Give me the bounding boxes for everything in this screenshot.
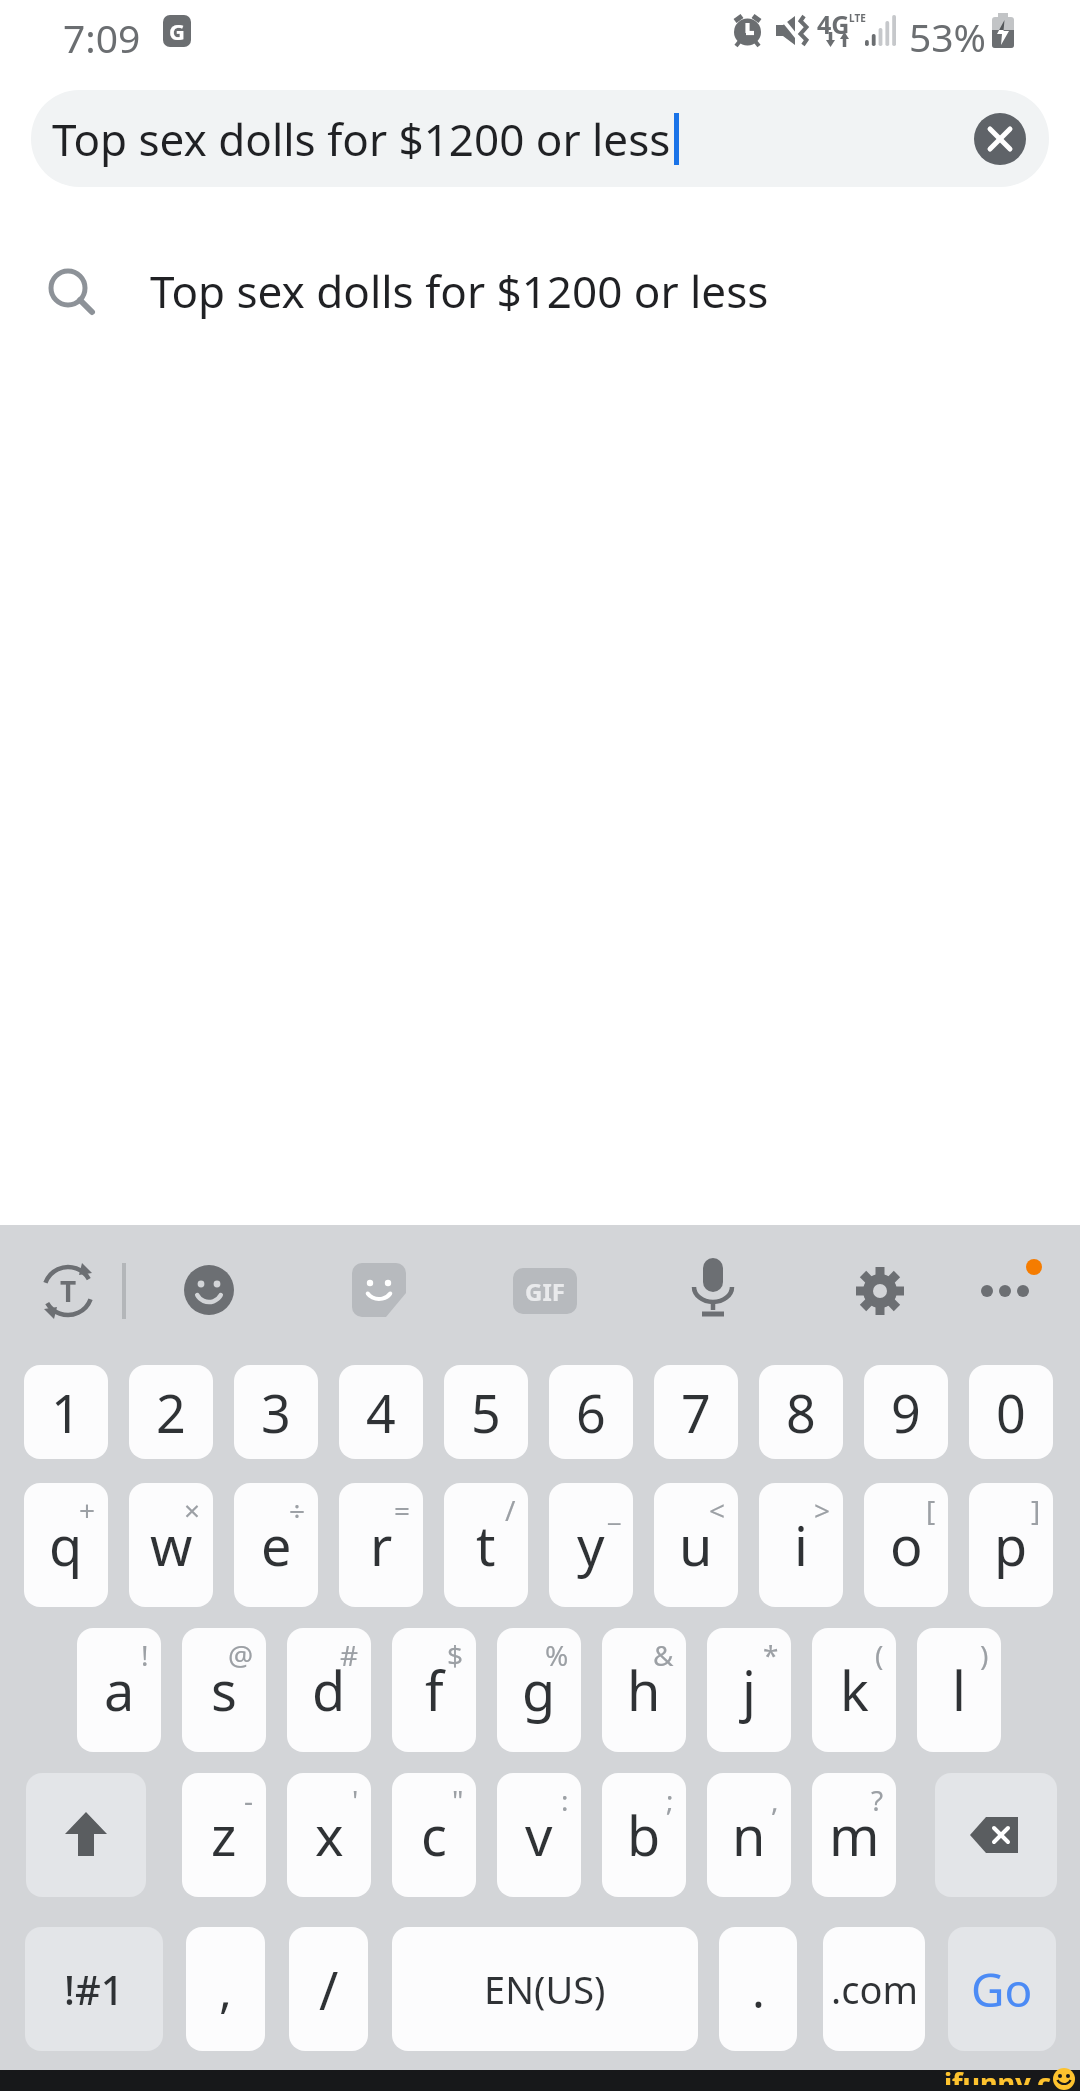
staticText: h — [627, 1653, 661, 1727]
button[interactable]: @ — [182, 1628, 266, 1752]
button[interactable]: , — [186, 1927, 265, 2051]
staticText: t — [476, 1508, 496, 1582]
button[interactable]: 6 — [549, 1365, 633, 1459]
staticText: " — [452, 1781, 464, 1819]
button[interactable]: 1 — [24, 1365, 108, 1459]
staticText: : — [561, 1781, 569, 1819]
button[interactable]: $ — [392, 1628, 476, 1752]
button[interactable]: ! — [77, 1628, 161, 1752]
button[interactable]: EN(US) — [392, 1927, 698, 2051]
button[interactable]: 9 — [864, 1365, 948, 1459]
staticText: ] — [1031, 1491, 1041, 1529]
button[interactable]: # — [287, 1628, 371, 1752]
staticText: r — [370, 1508, 393, 1582]
button[interactable]: / — [444, 1483, 528, 1607]
staticText: ' — [352, 1781, 359, 1819]
staticText: ) — [980, 1636, 989, 1674]
button[interactable]: ; — [602, 1773, 686, 1897]
staticText: EN(US) — [484, 1963, 606, 2015]
button[interactable] — [935, 1773, 1057, 1897]
staticText: k — [840, 1653, 869, 1727]
button[interactable] — [26, 1773, 146, 1897]
staticText: i — [794, 1508, 808, 1582]
staticText: e — [261, 1508, 292, 1582]
staticText: a — [104, 1653, 135, 1727]
button[interactable]: ] — [969, 1483, 1053, 1607]
staticText: v — [525, 1798, 553, 1872]
button[interactable] — [852, 1263, 908, 1319]
button[interactable]: / — [289, 1927, 368, 2051]
staticText: 4 — [366, 1377, 396, 1448]
staticText: ( — [875, 1636, 884, 1674]
button[interactable]: 8 — [759, 1365, 843, 1459]
staticText: Go — [971, 1958, 1033, 2021]
staticText: f — [425, 1653, 444, 1727]
staticText: 3 — [261, 1377, 291, 1448]
button[interactable]: % — [497, 1628, 581, 1752]
staticText: LTE — [849, 11, 866, 25]
staticText: 4G — [817, 7, 850, 41]
button[interactable]: [ — [864, 1483, 948, 1607]
button[interactable]: _ — [549, 1483, 633, 1607]
button[interactable]: T — [38, 1261, 98, 1321]
button[interactable] — [975, 1255, 1045, 1305]
button[interactable]: ) — [917, 1628, 1001, 1752]
staticText: Top sex dolls for $1200 or less — [150, 261, 769, 321]
button[interactable]: ' — [287, 1773, 371, 1897]
button[interactable]: = — [339, 1483, 423, 1607]
button[interactable]: 3 — [234, 1365, 318, 1459]
button[interactable]: " — [392, 1773, 476, 1897]
button[interactable]: ( — [812, 1628, 896, 1752]
button[interactable] — [183, 1265, 235, 1317]
staticText: , — [771, 1781, 779, 1819]
button[interactable]: , — [707, 1773, 791, 1897]
button[interactable]: Go — [948, 1927, 1056, 2051]
staticText: . — [752, 1957, 765, 2022]
button[interactable]: : — [497, 1773, 581, 1897]
staticText: l — [952, 1653, 966, 1727]
button[interactable]: 0 — [969, 1365, 1053, 1459]
staticText: _ — [608, 1491, 621, 1529]
button[interactable]: .com — [823, 1927, 925, 2051]
button[interactable]: 2 — [129, 1365, 213, 1459]
staticText: ÷ — [289, 1491, 306, 1529]
button[interactable]: 5 — [444, 1365, 528, 1459]
button[interactable]: ÷ — [234, 1483, 318, 1607]
staticText: ; — [666, 1781, 674, 1819]
staticText: @ — [228, 1636, 254, 1674]
button[interactable]: 4 — [339, 1365, 423, 1459]
button[interactable]: - — [182, 1773, 266, 1897]
button[interactable]: GIF — [513, 1268, 577, 1314]
staticText: - — [244, 1781, 254, 1819]
button[interactable] — [974, 113, 1026, 165]
staticText: > — [814, 1491, 831, 1529]
staticText: s — [211, 1653, 237, 1727]
staticText: ? — [871, 1781, 884, 1819]
button[interactable]: & — [602, 1628, 686, 1752]
staticText: g — [522, 1653, 556, 1727]
button[interactable]: ? — [812, 1773, 896, 1897]
staticText: ! — [141, 1636, 149, 1674]
button[interactable]: Top sex dolls for $1200 or less — [0, 235, 1080, 345]
button[interactable]: × — [129, 1483, 213, 1607]
button[interactable] — [352, 1263, 406, 1317]
staticText: 53% — [909, 10, 987, 63]
button[interactable]: !#1 — [25, 1927, 163, 2051]
button[interactable] — [686, 1258, 742, 1324]
staticText: .com — [831, 1963, 918, 2015]
staticText: !#1 — [64, 1962, 124, 2016]
button[interactable]: Top sex dolls for $1200 or less — [31, 90, 1049, 187]
button[interactable]: < — [654, 1483, 738, 1607]
button[interactable]: 7 — [654, 1365, 738, 1459]
staticText: $ — [447, 1636, 464, 1674]
button[interactable]: > — [759, 1483, 843, 1607]
staticText: T — [60, 1272, 77, 1310]
button[interactable]: . — [719, 1927, 797, 2051]
button[interactable]: * — [707, 1628, 791, 1752]
button[interactable]: + — [24, 1483, 108, 1607]
staticText: 8 — [786, 1377, 816, 1448]
staticText: m — [829, 1798, 880, 1872]
staticText: x — [315, 1798, 344, 1872]
staticText: q — [49, 1508, 83, 1582]
staticText: 9 — [891, 1377, 921, 1448]
